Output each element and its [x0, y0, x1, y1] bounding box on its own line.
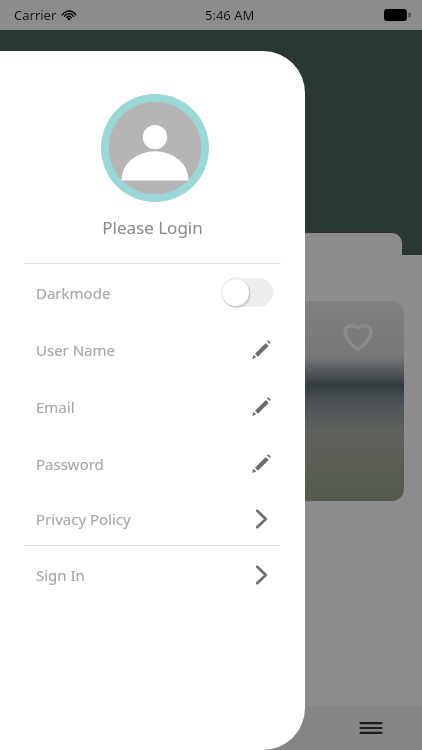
button[interactable]: Password: [0, 435, 305, 492]
other: Edit email: [249, 395, 273, 419]
button[interactable]: User Name: [0, 321, 305, 378]
other: Edit password: [249, 452, 273, 476]
staticText: 1: [40, 561, 49, 580]
staticText: Email: [36, 397, 75, 417]
other: Edit user name: [249, 338, 273, 362]
button[interactable]: Email: [0, 378, 305, 435]
other: Open privacy policy: [249, 507, 273, 531]
staticText: 6 rental ...: [18, 509, 98, 531]
staticText: Sign In: [36, 565, 85, 585]
staticText: Privacy Policy: [36, 509, 131, 529]
staticText: 5:46 AM: [205, 6, 255, 24]
staticText: Darkmode: [36, 283, 111, 303]
button[interactable]: Darkmode toggle: [221, 278, 273, 307]
staticText: User Name: [36, 340, 116, 360]
button[interactable]: Sign In: [0, 546, 305, 604]
button[interactable]: Darkmode: [0, 264, 305, 321]
staticText: Carrier: [14, 6, 57, 24]
button[interactable]: Privacy Policy: [0, 492, 305, 545]
other: Sign in: [249, 563, 273, 587]
staticText: Password: [36, 454, 104, 474]
staticText: Swan Valley Wa...: [18, 536, 131, 555]
staticText: Please Login: [102, 216, 203, 239]
